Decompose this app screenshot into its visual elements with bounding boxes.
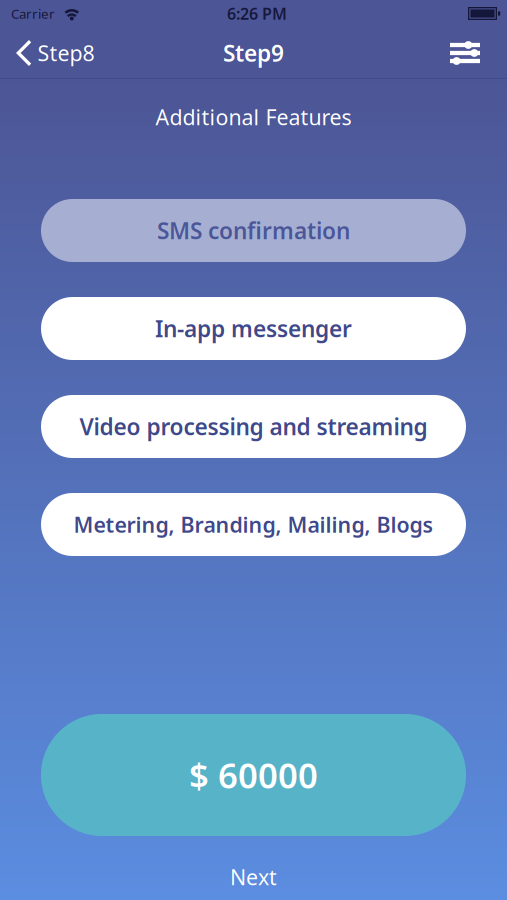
staticText: Step8 — [37, 39, 94, 67]
button[interactable]: In-app messenger — [41, 297, 466, 360]
staticText: Metering, Branding, Mailing, Blogs — [73, 510, 433, 539]
staticText: Step9 — [223, 38, 284, 68]
staticText: SMS confirmation — [157, 215, 350, 245]
staticText: Carrier — [11, 5, 55, 22]
button[interactable]: Metering, Branding, Mailing, Blogs — [41, 493, 466, 556]
button[interactable]: Video processing and streaming — [41, 395, 466, 458]
button[interactable]: Step8 — [0, 27, 107, 79]
staticText: Video processing and streaming — [79, 411, 427, 441]
staticText: In-app messenger — [155, 313, 352, 343]
staticText: 6:26 PM — [227, 3, 287, 24]
staticText: Additional Features — [155, 103, 351, 131]
button[interactable]: Next — [208, 864, 299, 890]
button[interactable]: $ 60000 — [41, 714, 466, 836]
staticText: $ 60000 — [189, 752, 318, 798]
button[interactable]: Filters — [436, 27, 507, 79]
button[interactable]: SMS confirmation — [41, 199, 466, 262]
staticText: Next — [230, 863, 277, 891]
